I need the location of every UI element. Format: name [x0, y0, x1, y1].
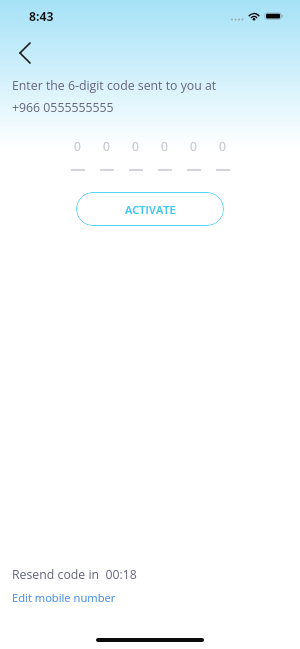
staticText: ACTIVATE: [125, 202, 176, 217]
staticText: 0: [74, 138, 81, 154]
staticText: 0: [219, 138, 226, 154]
staticText: Resend code in 00:18: [12, 566, 137, 583]
staticText: Enter the 6-digit code sent to you at: [12, 77, 217, 94]
staticText: 0: [190, 138, 197, 154]
button[interactable]: ACTIVATE: [76, 192, 224, 226]
button[interactable]: Edit mobile number: [12, 590, 116, 605]
staticText: 0: [161, 138, 168, 154]
staticText: 0: [132, 138, 139, 154]
staticText: 0: [103, 138, 110, 154]
staticText: +966 0555555555: [12, 99, 114, 116]
staticText: Edit mobile number: [12, 590, 116, 605]
staticText: 8:43: [29, 8, 54, 25]
button[interactable]: Back: [3, 31, 47, 75]
